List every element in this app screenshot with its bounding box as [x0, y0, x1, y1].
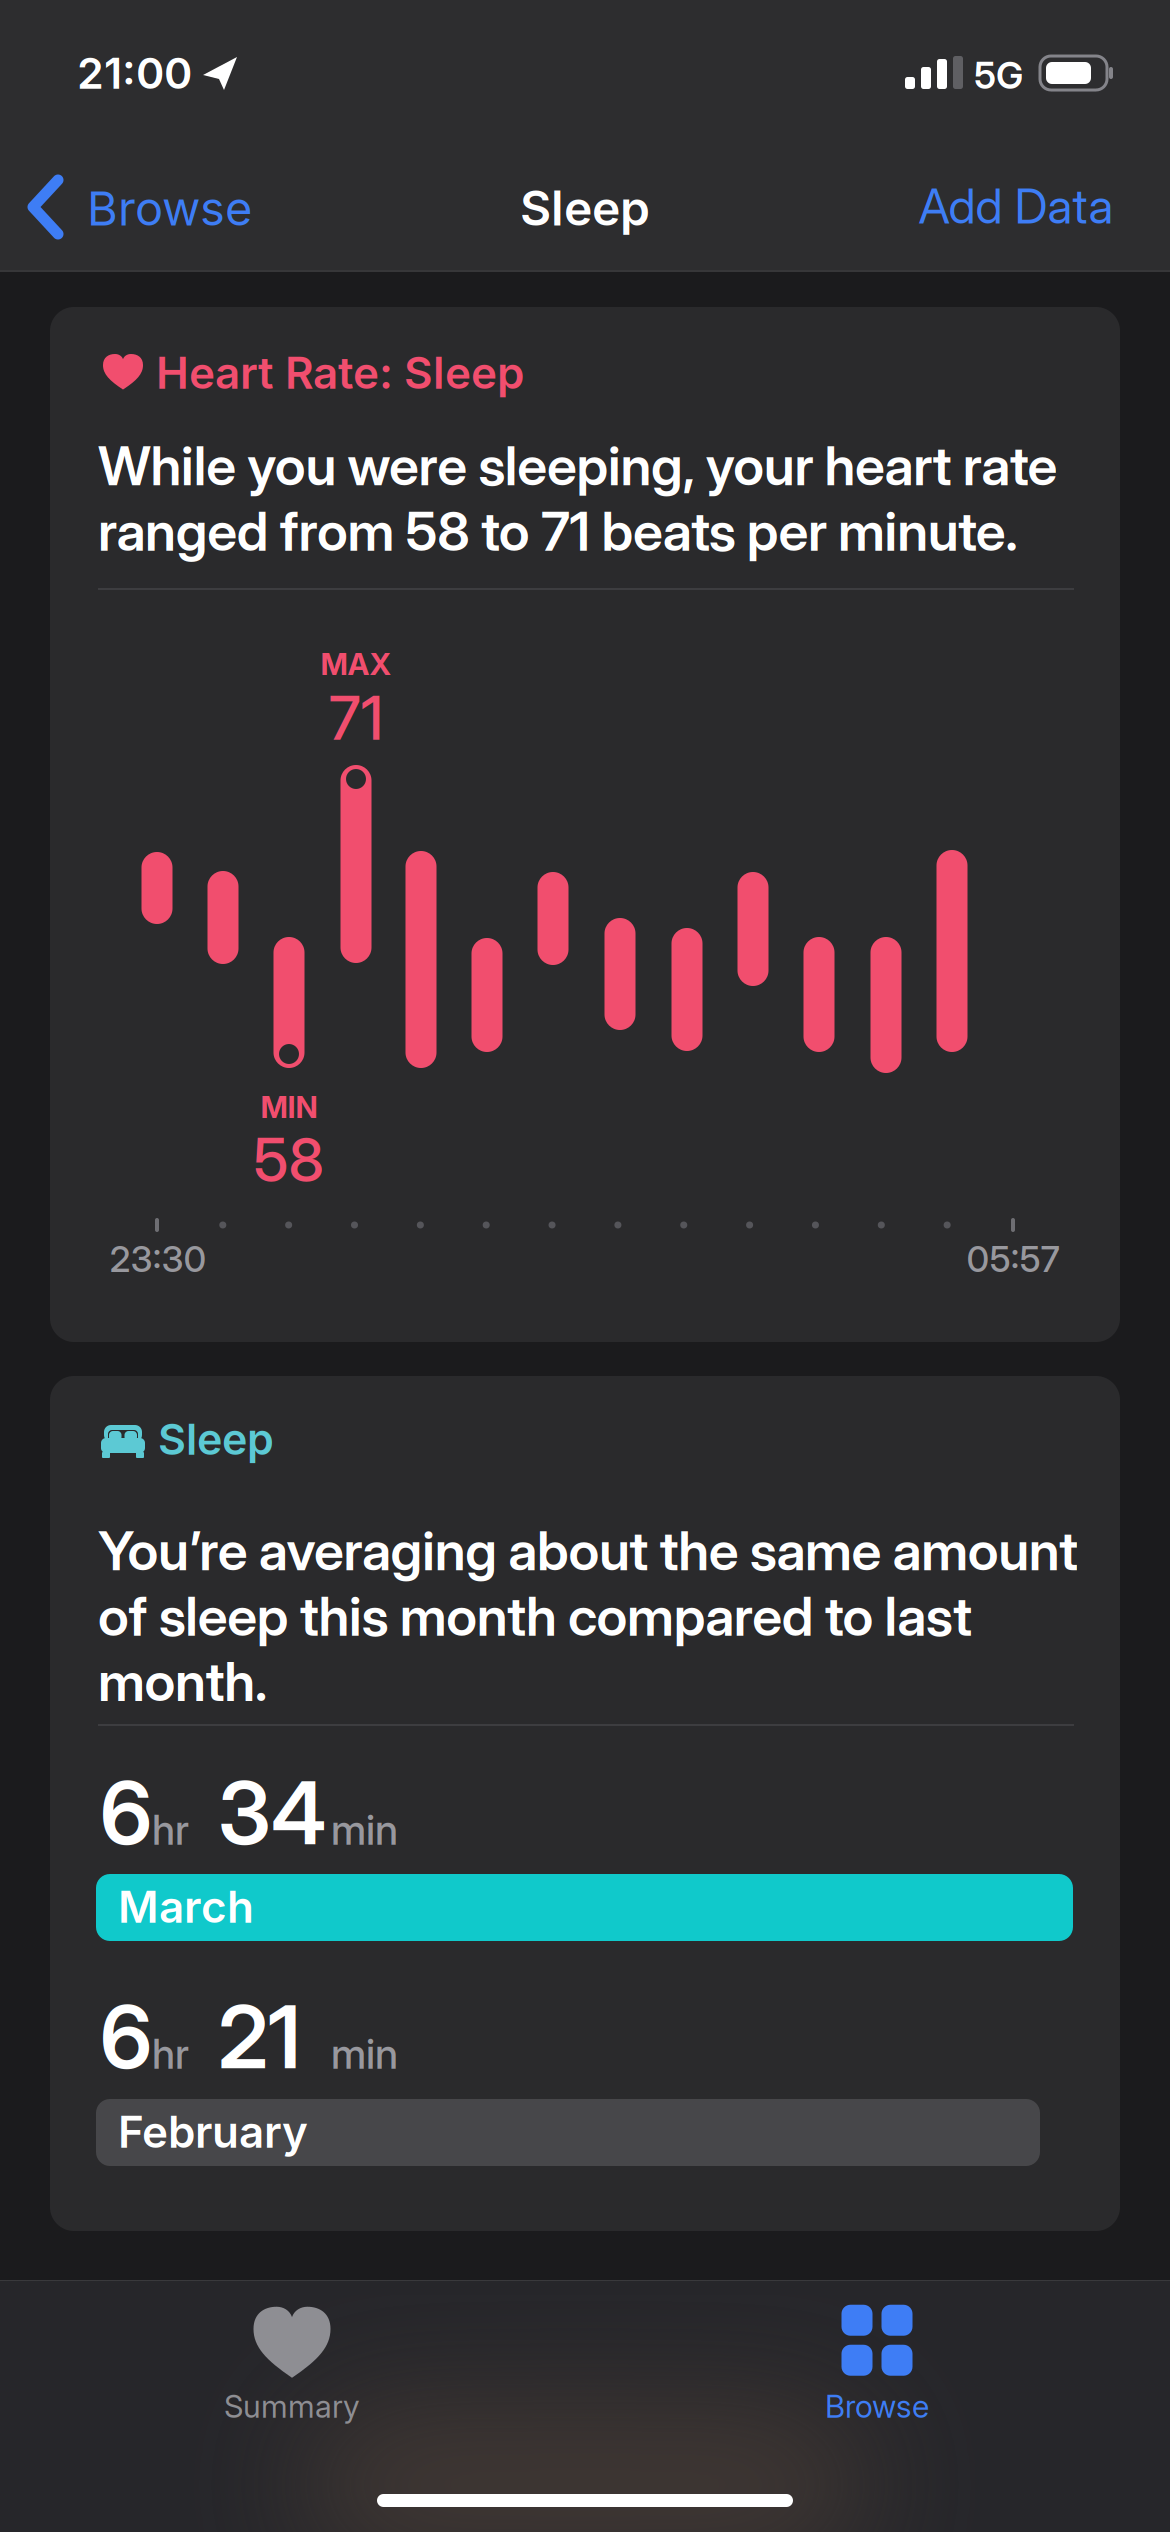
staticText: 34 [218, 1761, 326, 1865]
staticText: min [331, 2029, 398, 2079]
staticText: 23:30 [109, 1237, 206, 1281]
staticText: 58 [253, 1124, 324, 1196]
staticText: Browse [87, 180, 252, 237]
staticText: hr [152, 1805, 189, 1855]
staticText: Heart Rate: Sleep [156, 346, 524, 399]
staticText: 21:00 [77, 47, 192, 99]
staticText: hr [152, 2029, 189, 2079]
button[interactable]: Add Data [918, 177, 1113, 235]
staticText: 6 [100, 1985, 152, 2089]
staticText: MAX [320, 646, 391, 682]
staticText: Browse [825, 2388, 929, 2425]
staticText: March [118, 1880, 254, 1933]
staticText: 6 [100, 1761, 152, 1865]
staticText: 5G [974, 53, 1023, 98]
staticText: 05:57 [966, 1237, 1059, 1281]
staticText: Sleep [520, 179, 650, 237]
staticText: 21 [218, 1985, 301, 2089]
staticText: February [118, 2105, 308, 2158]
button[interactable]: Summary [224, 2307, 360, 2425]
staticText: You’re averaging about the same amount o… [98, 1518, 1078, 1714]
staticText: min [331, 1805, 398, 1855]
staticText: Sleep [158, 1413, 274, 1465]
button[interactable]: Heart Rate: Sleep [50, 307, 1120, 1342]
staticText: MIN [260, 1089, 317, 1125]
staticText: 71 [329, 682, 383, 754]
staticText: Summary [224, 2388, 360, 2425]
staticText: Add Data [918, 177, 1113, 235]
button[interactable]: Browse [30, 170, 1170, 442]
staticText: While you were sleeping, your heart rate… [98, 433, 1057, 564]
button[interactable]: Browse [825, 2305, 929, 2425]
button[interactable]: Sleep [50, 1376, 1120, 2231]
